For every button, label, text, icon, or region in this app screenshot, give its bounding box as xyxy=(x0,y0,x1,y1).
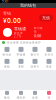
staticText: 发现 xyxy=(32,96,38,99)
staticText: 零钱通 xyxy=(14,26,26,31)
button[interactable]: 我 xyxy=(42,91,56,99)
button[interactable]: 收付款 xyxy=(0,47,14,56)
staticText: 我 xyxy=(47,96,50,99)
staticText: 安全保障 交易资金受保护 xyxy=(7,41,41,44)
button[interactable]: 支付分 xyxy=(42,47,56,56)
staticText: 收益率2.1% xyxy=(14,31,23,38)
staticText: 充值 xyxy=(42,15,50,20)
staticText: 银行卡 xyxy=(30,53,39,56)
staticText: 微信 xyxy=(4,96,10,99)
staticText: 通讯录 xyxy=(16,96,25,99)
staticText: 更多 xyxy=(46,65,52,68)
staticText: 收付款 xyxy=(2,53,11,56)
staticText: 信用卡 xyxy=(30,65,39,68)
staticText: 昨日收益 xyxy=(34,26,43,33)
button[interactable]: 保险 xyxy=(0,59,14,68)
button[interactable]: 充值 xyxy=(39,14,53,21)
button[interactable]: 通讯录 xyxy=(14,91,28,99)
button[interactable]: 微信 xyxy=(0,91,14,99)
staticText: 零钱 xyxy=(3,11,11,16)
button[interactable]: 信用卡 xyxy=(28,59,42,68)
button[interactable]: 更多 xyxy=(42,59,56,68)
button[interactable]: 发现 xyxy=(28,91,42,99)
staticText: 我的钱包 xyxy=(20,3,36,8)
staticText: 9:41 xyxy=(2,0,9,3)
staticText: 0.00 xyxy=(34,33,41,38)
staticText: ¥0.00 xyxy=(3,16,21,25)
button[interactable]: 零钱通 xyxy=(3,26,26,38)
staticText: 支付分 xyxy=(44,53,53,56)
staticText: 理财 xyxy=(18,65,24,68)
staticText: 零钱通 xyxy=(16,53,25,56)
button[interactable]: 零钱通 xyxy=(14,47,28,56)
button[interactable]: 理财 xyxy=(14,59,28,68)
staticText: 保险 xyxy=(4,65,10,68)
button[interactable]: 银行卡 xyxy=(28,47,42,56)
